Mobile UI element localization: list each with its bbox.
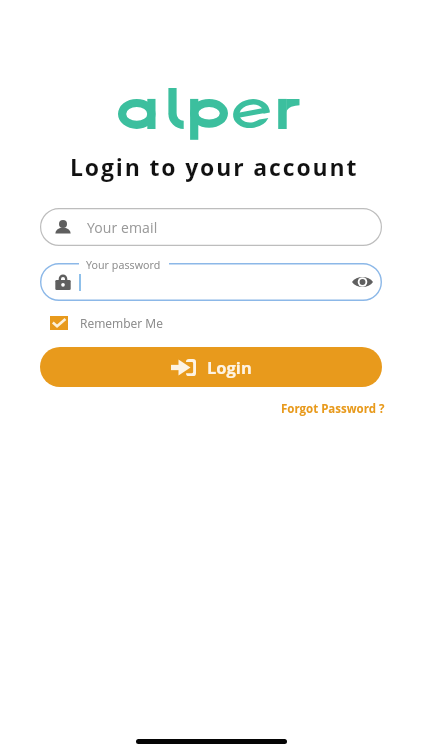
staticText: Login to your account: [70, 151, 359, 182]
button[interactable]: Your email: [40, 208, 382, 246]
button[interactable]: Login: [40, 347, 382, 387]
button[interactable]: Forgot Password ?: [281, 401, 385, 417]
staticText: Your email: [87, 218, 158, 237]
staticText: Login: [207, 356, 252, 378]
button[interactable]: Remember Me: [50, 311, 163, 334]
staticText: Forgot Password ?: [281, 401, 385, 417]
staticText: Remember Me: [80, 315, 163, 331]
button[interactable]: Show password: [40, 263, 382, 301]
button[interactable]: Show password: [347, 267, 377, 297]
staticText: Your password: [86, 258, 161, 273]
